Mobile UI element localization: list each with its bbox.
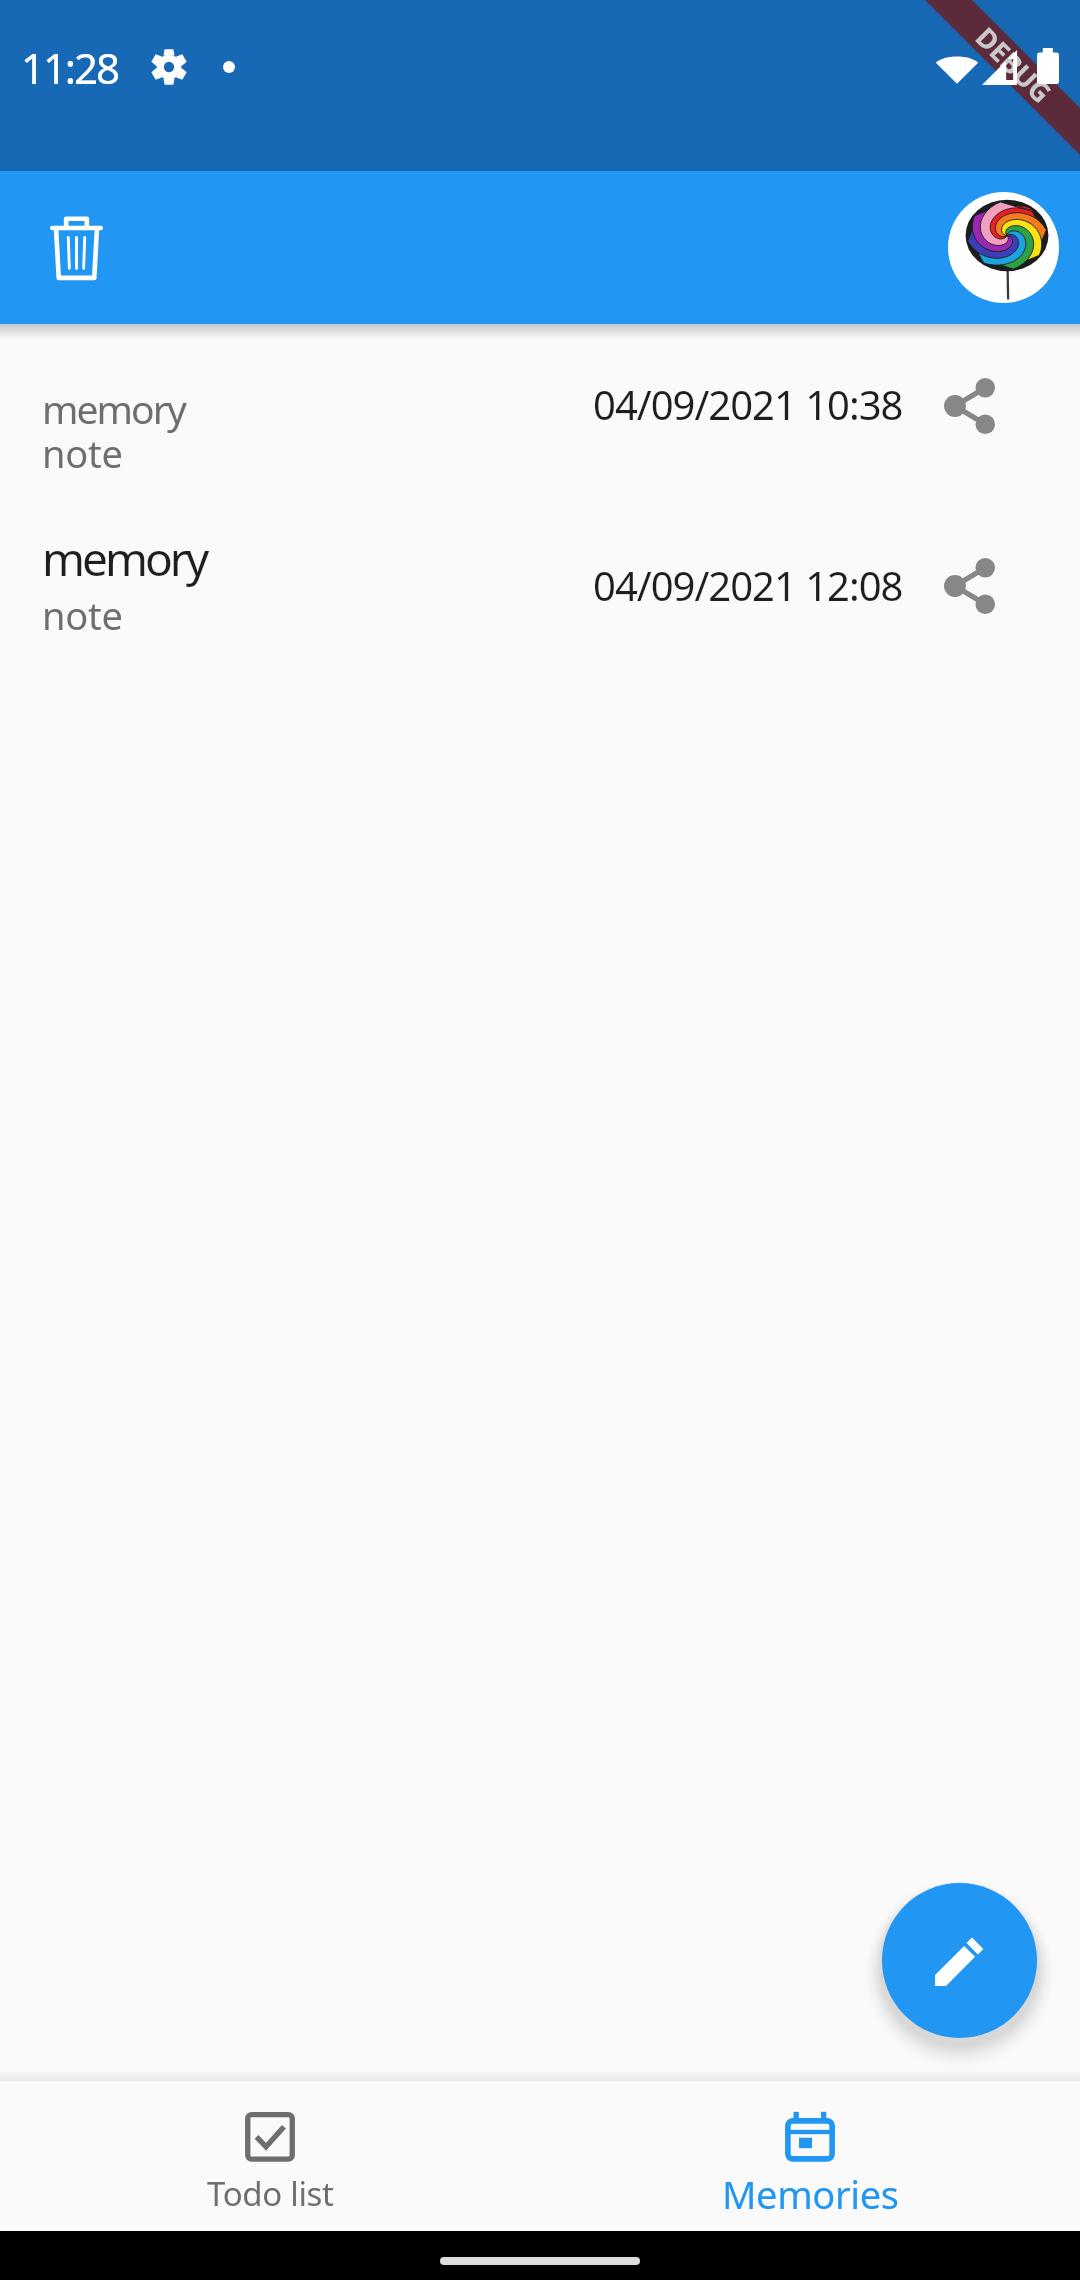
staticText: note (42, 427, 123, 479)
staticText: memory (42, 527, 207, 590)
button[interactable]: Memories (540, 2079, 1080, 2231)
staticText: 04/09/2021 12:08 (593, 558, 903, 612)
button[interactable] (0, 324, 1080, 495)
button[interactable] (0, 495, 1080, 685)
button[interactable]: Account (948, 192, 1059, 303)
staticText: memory (42, 382, 185, 435)
button[interactable]: New memory (882, 1883, 1037, 2038)
button[interactable]: Todo list (0, 2079, 540, 2231)
button[interactable]: Share (923, 359, 1017, 453)
staticText: Todo list (207, 2171, 334, 2216)
button[interactable]: Share (923, 539, 1017, 633)
button[interactable]: Delete (22, 194, 130, 302)
staticText: note (42, 589, 123, 641)
staticText: DEBUG (968, 19, 1060, 111)
staticText: 11:28 (21, 39, 118, 96)
staticText: Memories (722, 2168, 899, 2220)
staticText: 04/09/2021 10:38 (593, 377, 903, 431)
